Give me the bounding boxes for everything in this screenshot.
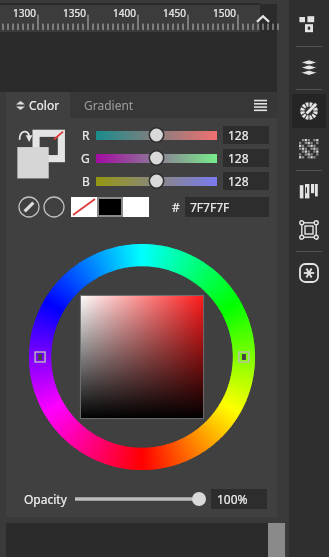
button[interactable]: 128 — [223, 126, 269, 144]
button[interactable]: Color — [292, 94, 326, 128]
staticText: Opacity — [24, 491, 67, 507]
staticText: 128 — [228, 173, 249, 189]
button[interactable] — [96, 149, 217, 167]
staticText: 1350 — [63, 6, 86, 20]
button[interactable] — [14, 126, 70, 188]
staticText: # — [172, 199, 180, 215]
button[interactable]: 7F7F7F — [185, 197, 269, 217]
button[interactable] — [96, 172, 217, 190]
button[interactable]: Color — [16, 92, 60, 118]
button[interactable]: Color wheel — [29, 244, 255, 470]
button[interactable] — [71, 197, 97, 217]
button[interactable]: 100% — [211, 489, 267, 509]
button[interactable]: Gradient — [84, 92, 134, 118]
button[interactable]: Pick color — [18, 196, 40, 218]
staticText: 1500 — [213, 6, 236, 20]
staticText: 1450 — [163, 6, 186, 20]
staticText: R — [82, 127, 90, 143]
button[interactable]: Transform — [292, 8, 326, 42]
staticText: 128 — [228, 127, 249, 143]
button[interactable]: Panel menu — [249, 94, 271, 116]
button[interactable]: 128 — [223, 172, 269, 190]
staticText: 100% — [217, 491, 248, 507]
button[interactable]: 128 — [223, 149, 269, 167]
staticText: 128 — [228, 150, 249, 166]
button[interactable]: Effects — [292, 256, 326, 290]
staticText: Gradient — [84, 97, 134, 113]
staticText: B — [82, 173, 90, 189]
staticText: 1400 — [113, 6, 136, 20]
button[interactable]: Layers — [292, 51, 326, 85]
button[interactable] — [96, 126, 217, 144]
staticText: 1300 — [13, 6, 36, 20]
staticText: 7F7F7F — [190, 199, 230, 215]
staticText: G — [81, 150, 90, 166]
button[interactable]: Brushes — [292, 175, 326, 209]
button[interactable]: Collapse — [249, 6, 277, 34]
button[interactable]: Swatches — [292, 132, 326, 166]
button[interactable]: Align — [292, 213, 326, 247]
staticText: Color — [29, 97, 60, 113]
button[interactable]: No color — [43, 196, 65, 218]
button[interactable] — [75, 490, 207, 508]
